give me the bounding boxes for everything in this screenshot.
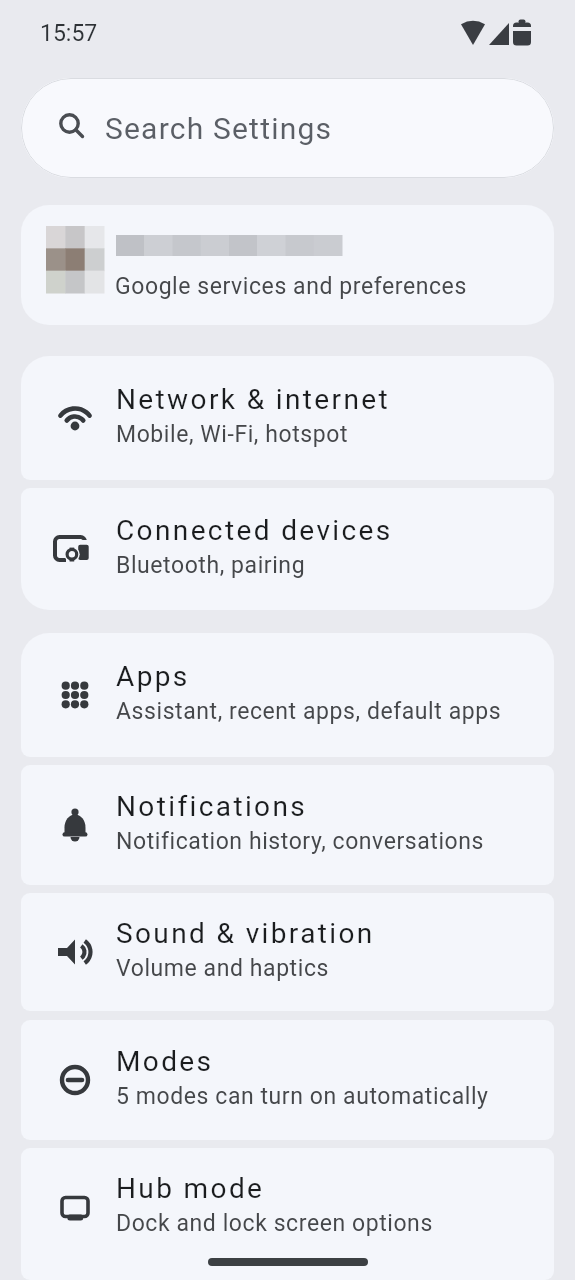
staticText: Volume and haptics xyxy=(116,955,329,982)
staticText: Network & internet xyxy=(116,383,391,416)
button[interactable]: Apps xyxy=(21,633,554,757)
button[interactable]: Sound & vibration xyxy=(21,893,554,1011)
staticText: Assistant, recent apps, default apps xyxy=(116,698,502,725)
staticText: Modes xyxy=(116,1045,214,1078)
staticText: Dock and lock screen options xyxy=(116,1210,433,1237)
staticText: 15:57 xyxy=(40,20,98,47)
staticText: Apps xyxy=(116,660,190,693)
staticText: Google services and preferences xyxy=(115,273,467,300)
staticText: Bluetooth, pairing xyxy=(116,552,306,579)
staticText: Notification history, conversations xyxy=(116,828,485,855)
staticText: Mobile, Wi-Fi, hotspot xyxy=(116,421,349,448)
button[interactable]: Search Settings xyxy=(21,78,554,178)
button[interactable]: Network & internet xyxy=(21,356,554,480)
button[interactable]: Notifications xyxy=(21,765,554,885)
button[interactable]: Google services and preferences xyxy=(21,205,554,325)
staticText: Sound & vibration xyxy=(116,917,375,950)
button[interactable]: Connected devices xyxy=(21,488,554,610)
staticText: 5 modes can turn on automatically xyxy=(116,1083,489,1110)
staticText: Search Settings xyxy=(105,111,333,146)
staticText: Notifications xyxy=(116,790,308,823)
button[interactable]: Hub mode xyxy=(21,1148,554,1280)
button[interactable]: Modes xyxy=(21,1020,554,1140)
staticText: Connected devices xyxy=(116,514,393,547)
staticText: Hub mode xyxy=(116,1172,265,1205)
